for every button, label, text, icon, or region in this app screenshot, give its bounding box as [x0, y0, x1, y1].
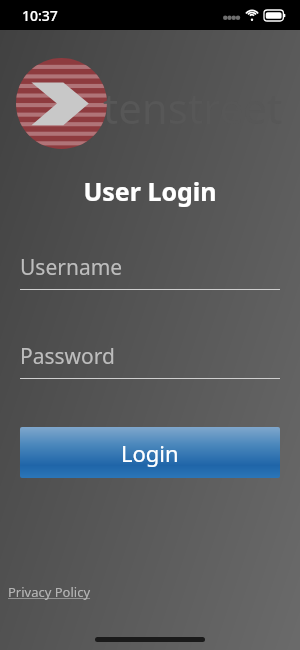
button[interactable]: Username: [20, 253, 280, 290]
button[interactable]: Privacy Policy: [0, 579, 99, 605]
button[interactable]: Login: [20, 427, 280, 478]
staticText: Password: [20, 342, 115, 371]
staticText: Privacy Policy: [8, 583, 91, 601]
staticText: Username: [20, 253, 123, 282]
staticText: 10:37: [22, 6, 58, 25]
button[interactable]: Password: [20, 342, 280, 379]
staticText: User Login: [83, 174, 217, 208]
staticText: Login: [121, 438, 179, 468]
staticText: tenstreet: [103, 79, 283, 136]
